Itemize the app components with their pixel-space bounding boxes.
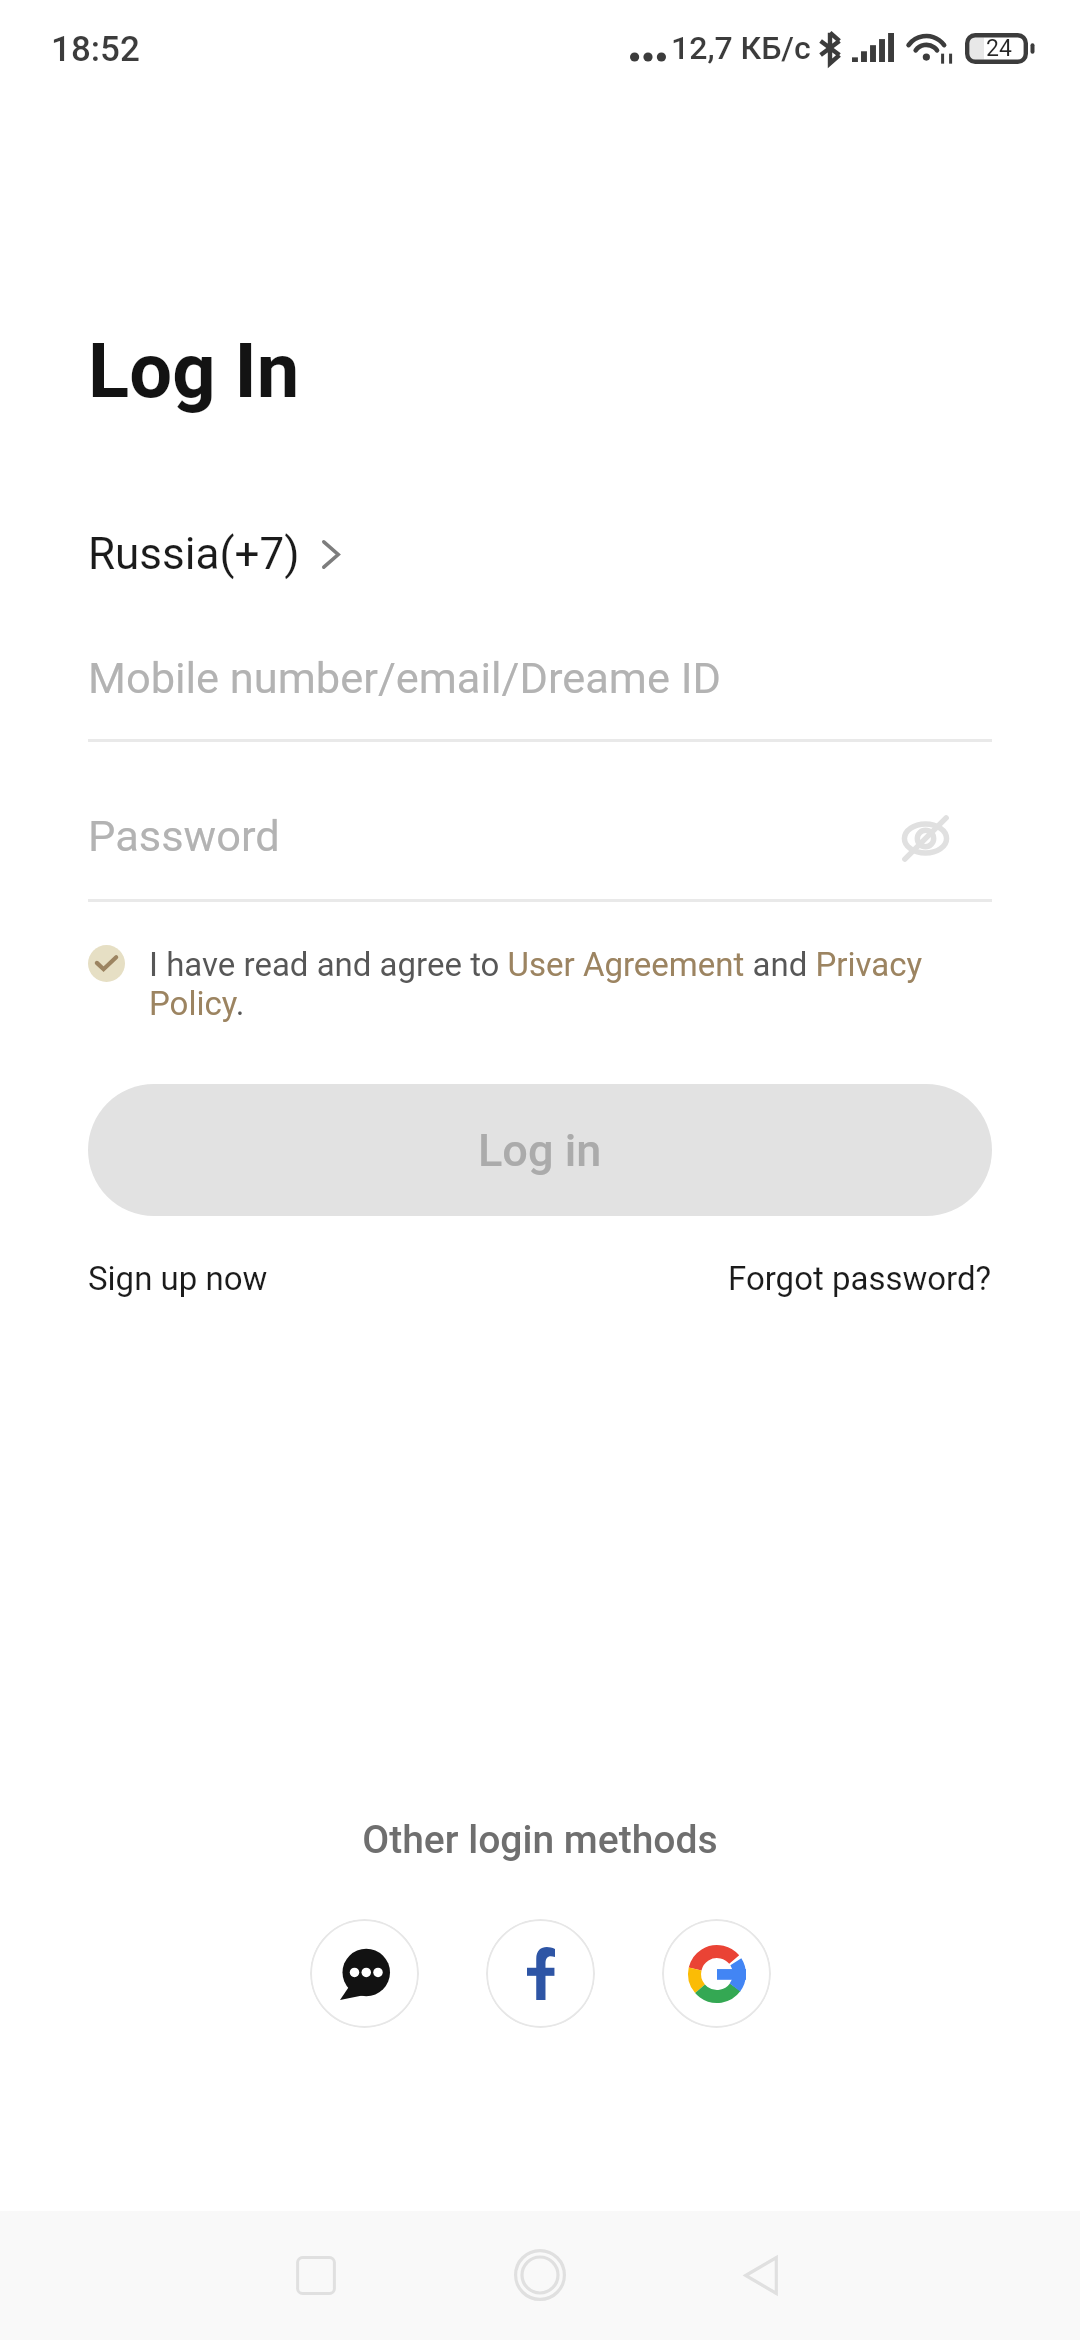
button[interactable]: Forgot password? — [728, 1240, 992, 1314]
staticText: Other login methods — [0, 1817, 1080, 1863]
staticText: Password — [88, 811, 280, 862]
button[interactable]: Log in — [88, 1084, 992, 1216]
staticText: Sign up now — [88, 1259, 268, 1298]
button[interactable]: I have read and agree to User Agreement … — [149, 945, 949, 1023]
staticText: Mobile number/email/Dreame ID — [88, 653, 721, 704]
button[interactable]: Google login — [662, 1919, 771, 2028]
staticText: Log in — [478, 1124, 602, 1177]
staticText: 18:52 — [51, 29, 140, 70]
button[interactable]: Sign up now — [88, 1240, 268, 1314]
staticText: I have read and agree to User Agreement … — [149, 945, 949, 1023]
button[interactable]: Recents — [256, 2215, 376, 2335]
button[interactable]: Facebook login — [486, 1919, 595, 2028]
staticText: 12,7 КБ/с — [671, 29, 811, 67]
staticText: Log In — [88, 326, 300, 415]
button[interactable]: Agree to terms — [88, 945, 125, 982]
staticText: 24 — [986, 35, 1012, 62]
button[interactable]: Back — [701, 2215, 821, 2335]
button[interactable]: Home — [480, 2215, 600, 2335]
button[interactable]: Show password — [876, 788, 975, 888]
button[interactable]: Russia(+7) — [85, 528, 348, 580]
staticText: Russia(+7) — [88, 528, 300, 580]
staticText: Forgot password? — [728, 1259, 992, 1298]
button[interactable]: Chat login — [310, 1919, 419, 2028]
